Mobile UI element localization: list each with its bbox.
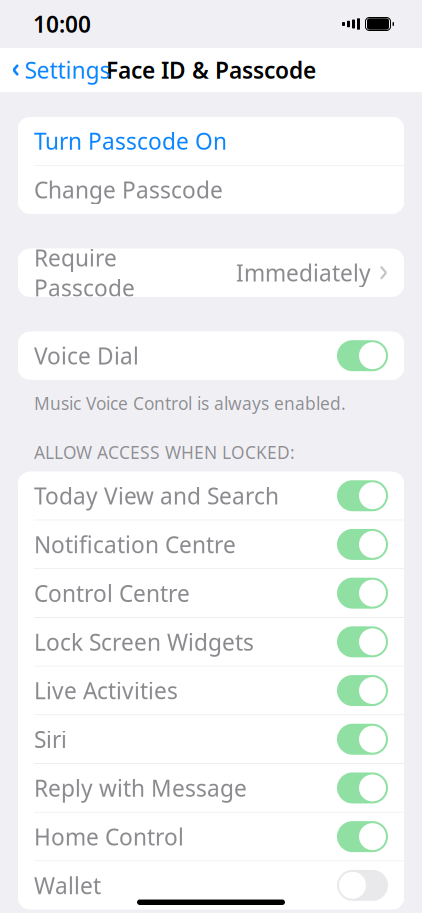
button[interactable]: Today View and Search xyxy=(18,472,404,520)
button[interactable]: Require Passcode xyxy=(18,249,404,297)
staticText: Today View and Search xyxy=(34,481,279,511)
staticText: Turn Passcode On xyxy=(34,126,227,156)
staticText: ALLOW ACCESS WHEN LOCKED: xyxy=(34,441,295,464)
staticText: 10:00 xyxy=(33,9,91,39)
button[interactable]: Control Centre xyxy=(18,569,404,617)
staticText: Music Voice Control is always enabled. xyxy=(34,392,346,415)
button[interactable]: Live Activities xyxy=(18,666,404,714)
staticText: Settings xyxy=(24,55,110,85)
staticText: Home Control xyxy=(34,822,184,852)
button[interactable]: Notification Centre xyxy=(18,520,404,568)
button[interactable]: Reply with Message xyxy=(18,764,404,812)
staticText: Voice Dial xyxy=(34,341,139,371)
staticText: Require Passcode xyxy=(34,243,135,303)
staticText: Lock Screen Widgets xyxy=(34,627,254,657)
button[interactable]: Change Passcode xyxy=(18,166,404,214)
staticText: Notification Centre xyxy=(34,529,236,559)
button[interactable]: Settings xyxy=(0,47,110,93)
button[interactable]: Home Control xyxy=(18,813,404,861)
staticText: Change Passcode xyxy=(34,175,223,205)
staticText: Live Activities xyxy=(34,675,178,706)
staticText: Immediately xyxy=(236,258,371,288)
button[interactable]: Wallet xyxy=(18,861,404,909)
button[interactable]: Lock Screen Widgets xyxy=(18,618,404,666)
staticText: Control Centre xyxy=(34,578,190,608)
button[interactable]: Voice Dial xyxy=(18,332,404,380)
button[interactable]: Siri xyxy=(18,715,404,763)
staticText: Reply with Message xyxy=(34,773,247,803)
staticText: Siri xyxy=(34,724,67,754)
staticText: Face ID & Passcode xyxy=(106,55,316,85)
staticText: Wallet xyxy=(34,870,101,900)
button[interactable]: Turn Passcode On xyxy=(18,117,404,165)
